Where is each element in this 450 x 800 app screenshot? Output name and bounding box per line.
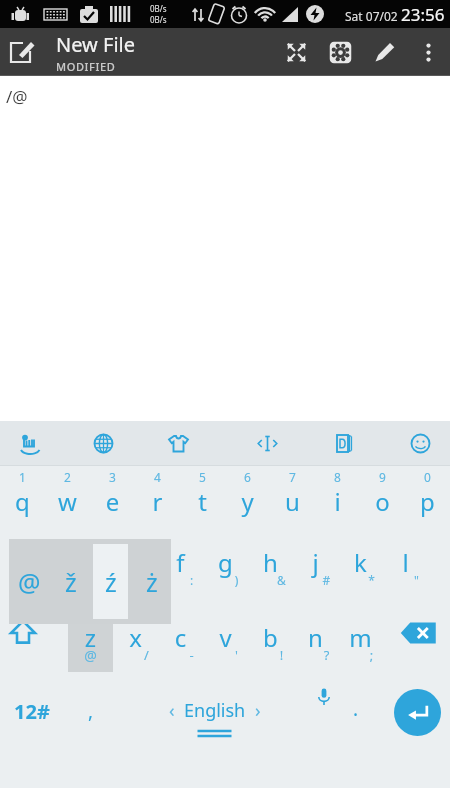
- button[interactable]: j: [293, 536, 338, 610]
- button[interactable]: n: [293, 610, 338, 684]
- staticText: ": [394, 572, 439, 588]
- staticText: l: [383, 546, 428, 579]
- staticText: t: [180, 485, 225, 518]
- button[interactable]: 9: [360, 466, 405, 536]
- staticText: o: [360, 485, 405, 518]
- staticText: ‹: [169, 698, 175, 723]
- button[interactable]: Shift: [0, 610, 45, 684]
- button[interactable]: Dictionary: [323, 421, 367, 466]
- staticText: f: [158, 546, 203, 579]
- button[interactable]: @: [9, 539, 50, 624]
- staticText: ż: [146, 565, 158, 599]
- button[interactable]: f: [158, 536, 203, 610]
- button[interactable]: /@: [0, 76, 450, 421]
- button[interactable]: 1: [0, 466, 45, 536]
- staticText: c: [158, 621, 203, 654]
- staticText: &: [259, 572, 304, 588]
- button[interactable]: ,: [68, 684, 113, 756]
- button[interactable]: v: [203, 610, 248, 684]
- button[interactable]: Gesture typing: [8, 421, 52, 466]
- button[interactable]: a: [23, 536, 68, 610]
- button[interactable]: Backspace: [387, 610, 450, 684]
- staticText: v: [203, 621, 248, 654]
- staticText: 0B/s: [150, 3, 167, 14]
- button[interactable]: Language: [81, 421, 125, 466]
- button[interactable]: 4: [135, 466, 180, 536]
- staticText: -: [169, 646, 214, 664]
- button[interactable]: 5: [180, 466, 225, 536]
- button[interactable]: 8: [315, 466, 360, 536]
- staticText: x: [113, 621, 158, 654]
- button[interactable]: x: [113, 610, 158, 684]
- staticText: s: [68, 546, 113, 579]
- staticText: MODIFIED: [56, 59, 116, 74]
- button[interactable]: 2: [45, 466, 90, 536]
- button[interactable]: ż: [131, 539, 172, 624]
- button[interactable]: New file: [0, 28, 48, 76]
- staticText: 0B/s: [150, 14, 167, 25]
- staticText: ': [214, 646, 259, 664]
- staticText: ~: [34, 572, 79, 588]
- button[interactable]: d: [113, 536, 158, 610]
- button[interactable]: 3: [90, 466, 135, 536]
- staticText: English: [184, 698, 246, 723]
- staticText: 3: [90, 469, 135, 485]
- staticText: w: [45, 485, 90, 518]
- staticText: j: [293, 546, 338, 579]
- button[interactable]: .: [333, 684, 378, 756]
- staticText: d: [113, 546, 158, 579]
- staticText: %: [124, 572, 169, 588]
- staticText: 8: [315, 469, 360, 485]
- staticText: 5: [180, 469, 225, 485]
- button[interactable]: h: [248, 536, 293, 610]
- staticText: 7: [270, 469, 315, 485]
- staticText: z: [68, 621, 113, 654]
- button[interactable]: z: [68, 610, 113, 684]
- button[interactable]: Voice input: [297, 684, 351, 756]
- staticText: q: [0, 485, 45, 518]
- staticText: y: [225, 485, 270, 518]
- staticText: e: [90, 485, 135, 518]
- button[interactable]: ‹: [113, 684, 316, 756]
- staticText: k: [338, 546, 383, 579]
- staticText: :: [169, 572, 214, 588]
- button[interactable]: k: [338, 536, 383, 610]
- staticText: b: [248, 621, 293, 654]
- button[interactable]: Theme: [156, 421, 200, 466]
- button[interactable]: Emoji: [398, 421, 442, 466]
- staticText: 0: [405, 469, 450, 485]
- staticText: @: [68, 646, 113, 665]
- button[interactable]: s: [68, 536, 113, 610]
- staticText: ;: [349, 646, 394, 664]
- button[interactable]: Settings: [318, 28, 362, 76]
- staticText: /: [124, 646, 169, 664]
- button[interactable]: More options: [406, 28, 450, 76]
- staticText: i: [315, 485, 360, 518]
- staticText: 4: [135, 469, 180, 485]
- staticText: /@: [6, 85, 28, 108]
- staticText: ź: [105, 565, 117, 599]
- button[interactable]: ź: [90, 539, 131, 624]
- staticText: ›: [255, 698, 261, 723]
- button[interactable]: 6: [225, 466, 270, 536]
- button[interactable]: 12#: [0, 684, 63, 756]
- button[interactable]: m: [338, 610, 383, 684]
- button[interactable]: Edit: [362, 28, 406, 76]
- staticText: @: [18, 565, 41, 599]
- button[interactable]: 7: [270, 466, 315, 536]
- button[interactable]: l: [383, 536, 428, 610]
- button[interactable]: Fullscreen: [274, 28, 318, 76]
- button[interactable]: Enter: [394, 689, 441, 736]
- staticText: n: [293, 621, 338, 654]
- staticText: ): [214, 572, 259, 588]
- button[interactable]: b: [248, 610, 293, 684]
- button[interactable]: g: [203, 536, 248, 610]
- button[interactable]: Cursor control: [245, 421, 289, 466]
- button[interactable]: c: [158, 610, 203, 684]
- staticText: *: [349, 572, 394, 588]
- button[interactable]: 0: [405, 466, 450, 536]
- staticText: r: [135, 485, 180, 518]
- staticText: 6: [225, 469, 270, 485]
- button[interactable]: ž: [50, 539, 91, 624]
- staticText: 12#: [14, 698, 50, 725]
